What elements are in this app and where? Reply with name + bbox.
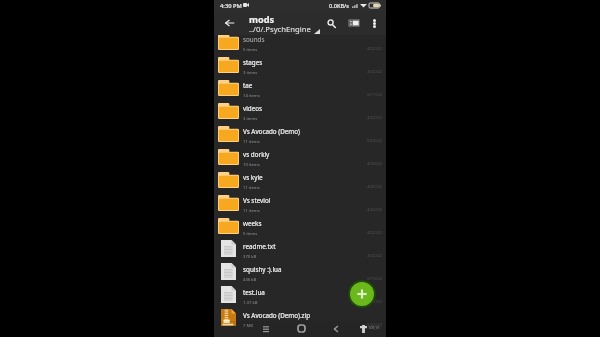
button[interactable]: vs dorkly (214, 148, 386, 171)
staticText: 4/22/22 (366, 69, 382, 75)
staticText: 14 items (243, 93, 260, 99)
button[interactable]: stages (214, 56, 386, 79)
staticText: 5/17/22 (366, 92, 382, 98)
staticText: 4/22/22 (366, 230, 382, 236)
staticText: 5/19/22 (366, 276, 382, 282)
staticText: 1.37 kB (243, 300, 258, 306)
staticText: Vs Avocado (Demo).zip (243, 311, 311, 320)
staticText: 11 items (243, 208, 260, 214)
staticText: 5 items (243, 231, 258, 237)
button[interactable]: Recent apps (259, 322, 272, 335)
button[interactable]: weeks (214, 217, 386, 240)
button[interactable]: videos (214, 102, 386, 125)
button[interactable]: Vs Avocado (Demo).zip (214, 309, 386, 332)
button[interactable]: tae (214, 79, 386, 102)
staticText: 3 items (243, 70, 258, 76)
staticText: 5/24/22 (366, 138, 382, 144)
staticText: 3 items (243, 116, 258, 122)
button[interactable]: Search (323, 15, 339, 31)
staticText: vs kyle (243, 173, 263, 182)
staticText: sounds (243, 35, 265, 44)
button[interactable]: sounds (214, 33, 386, 56)
staticText: Vs Avocado (Demo) (243, 127, 300, 136)
staticText: 11 items (243, 139, 260, 145)
staticText: videos (243, 104, 263, 113)
staticText: stages (243, 58, 263, 67)
staticText: 7 MB (243, 323, 254, 329)
staticText: 4/28/22 (366, 161, 382, 167)
button[interactable]: Add new (348, 280, 376, 308)
staticText: vs dorkly (243, 150, 270, 159)
staticText: Vs steviol (243, 196, 271, 205)
button[interactable]: Back (329, 322, 342, 335)
staticText: 4/22/22 (366, 253, 382, 259)
staticText: 10 items (243, 162, 260, 168)
staticText: 4/22/22 (366, 46, 382, 52)
staticText: 109,91 (368, 325, 380, 330)
button[interactable]: Change view (346, 15, 362, 31)
staticText: 4:30 PM (220, 2, 242, 10)
staticText: 436 kB (243, 277, 257, 283)
staticText: readme.txt (243, 242, 276, 251)
staticText: 5/17/22 (366, 299, 382, 305)
staticText: tae (243, 81, 253, 90)
button[interactable]: Vs Avocado (Demo) (214, 125, 386, 148)
button[interactable]: squishy :).lua (214, 263, 386, 286)
button[interactable]: Home (295, 322, 308, 335)
button[interactable]: Vs steviol (214, 194, 386, 217)
staticText: mods (249, 13, 275, 26)
staticText: test.lua (243, 288, 265, 297)
button[interactable]: test.lua (214, 286, 386, 309)
staticText: squishy :).lua (243, 265, 282, 274)
staticText: 4/22/22 (366, 115, 382, 121)
staticText: ../0/.PsychEngine (249, 24, 311, 34)
staticText: 370 kB (243, 254, 257, 260)
button[interactable]: readme.txt (214, 240, 386, 263)
staticText: 0.0KB/s (329, 2, 349, 10)
staticText: 4/22/22 (366, 207, 382, 213)
staticText: 5 items (243, 47, 258, 53)
button[interactable]: Navigate up (222, 16, 236, 30)
staticText: 5/24/22 (366, 322, 382, 328)
staticText: weeks (243, 219, 262, 228)
staticText: 11 items (243, 185, 260, 191)
staticText: 4/25/22 (366, 184, 382, 190)
button[interactable]: vs kyle (214, 171, 386, 194)
button[interactable]: More options (366, 15, 382, 31)
